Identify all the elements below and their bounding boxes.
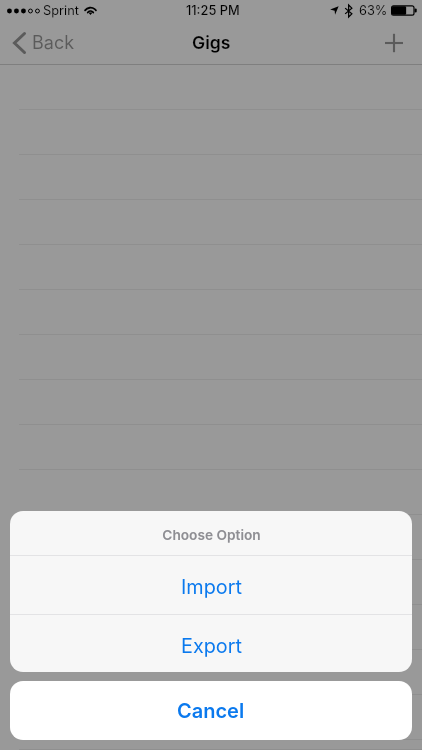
button[interactable]: Import [10,556,412,614]
button[interactable] [0,695,422,740]
button[interactable]: Cancel [10,681,412,740]
staticText: Back [32,32,75,54]
button[interactable]: Back [0,20,87,65]
staticText: Cancel [177,699,245,723]
staticText: Sprint [43,3,79,18]
staticText: Export [181,634,242,658]
button[interactable] [0,560,422,605]
button[interactable]: Export [10,615,412,672]
button[interactable] [0,515,422,560]
button[interactable]: Add [366,20,422,65]
staticText: 11:25 PM [186,3,240,18]
staticText: Choose Option [162,527,261,544]
staticText: Gigs [192,32,231,53]
button[interactable] [0,470,422,515]
staticText: Import [181,575,242,599]
button[interactable] [0,605,422,650]
staticText: 63% [359,3,388,18]
button[interactable] [0,650,422,695]
